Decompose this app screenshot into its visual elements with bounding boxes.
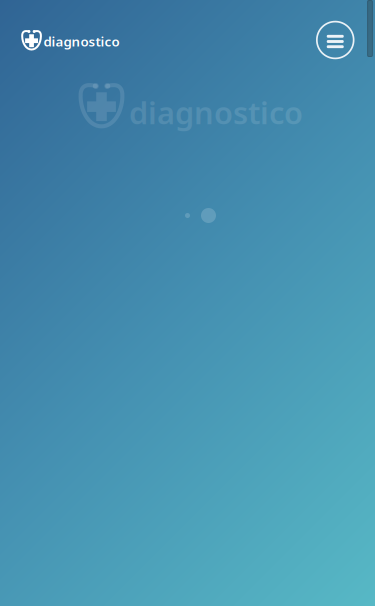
button[interactable]: Menu [316,21,354,59]
staticText: diagnostico [129,92,303,133]
staticText: diagnostico [43,32,119,50]
button[interactable]: diagnostico [21,29,122,51]
